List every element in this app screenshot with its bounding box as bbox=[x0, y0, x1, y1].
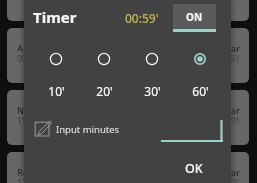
staticText: ar bbox=[231, 104, 240, 116]
button[interactable]: Meeting bbox=[7, 0, 249, 21]
staticText: 9) bbox=[231, 52, 239, 64]
button[interactable]: 30' bbox=[130, 47, 174, 97]
staticText: 10' bbox=[48, 83, 65, 99]
button[interactable]: Input minutes bbox=[32, 118, 147, 140]
staticText: ON bbox=[186, 10, 203, 24]
staticText: Note bbox=[17, 104, 39, 116]
staticText: Input minutes bbox=[56, 123, 120, 136]
staticText: ar bbox=[231, 166, 240, 178]
staticText: 10:00 bbox=[17, 0, 38, 2]
button[interactable]: 60' bbox=[178, 47, 222, 97]
button[interactable]: Note bbox=[7, 90, 249, 145]
staticText: 00:59' bbox=[125, 10, 159, 26]
button[interactable]: 20' bbox=[82, 47, 126, 97]
staticText: Reminder bbox=[17, 166, 60, 178]
button[interactable]: Anniversary bbox=[7, 28, 249, 83]
staticText: 30' bbox=[144, 83, 161, 99]
staticText: 9) bbox=[231, 0, 239, 2]
staticText: 12:00 bbox=[17, 177, 38, 183]
button[interactable]: 10' bbox=[34, 47, 78, 97]
button[interactable]: OK bbox=[166, 156, 221, 180]
staticText: Anniversary bbox=[17, 42, 69, 54]
staticText: 20' bbox=[96, 83, 113, 99]
staticText: 11:30 bbox=[17, 115, 38, 126]
staticText: OK bbox=[185, 160, 203, 177]
staticText: 09:15 bbox=[17, 53, 38, 64]
staticText: Timer bbox=[33, 7, 77, 27]
button[interactable]: Reminder bbox=[7, 152, 249, 183]
staticText: 9) bbox=[231, 176, 239, 183]
staticText: ar bbox=[231, 42, 240, 54]
staticText: 60' bbox=[192, 83, 209, 99]
button[interactable]: ON bbox=[173, 4, 216, 32]
staticText: 9) bbox=[231, 114, 239, 126]
